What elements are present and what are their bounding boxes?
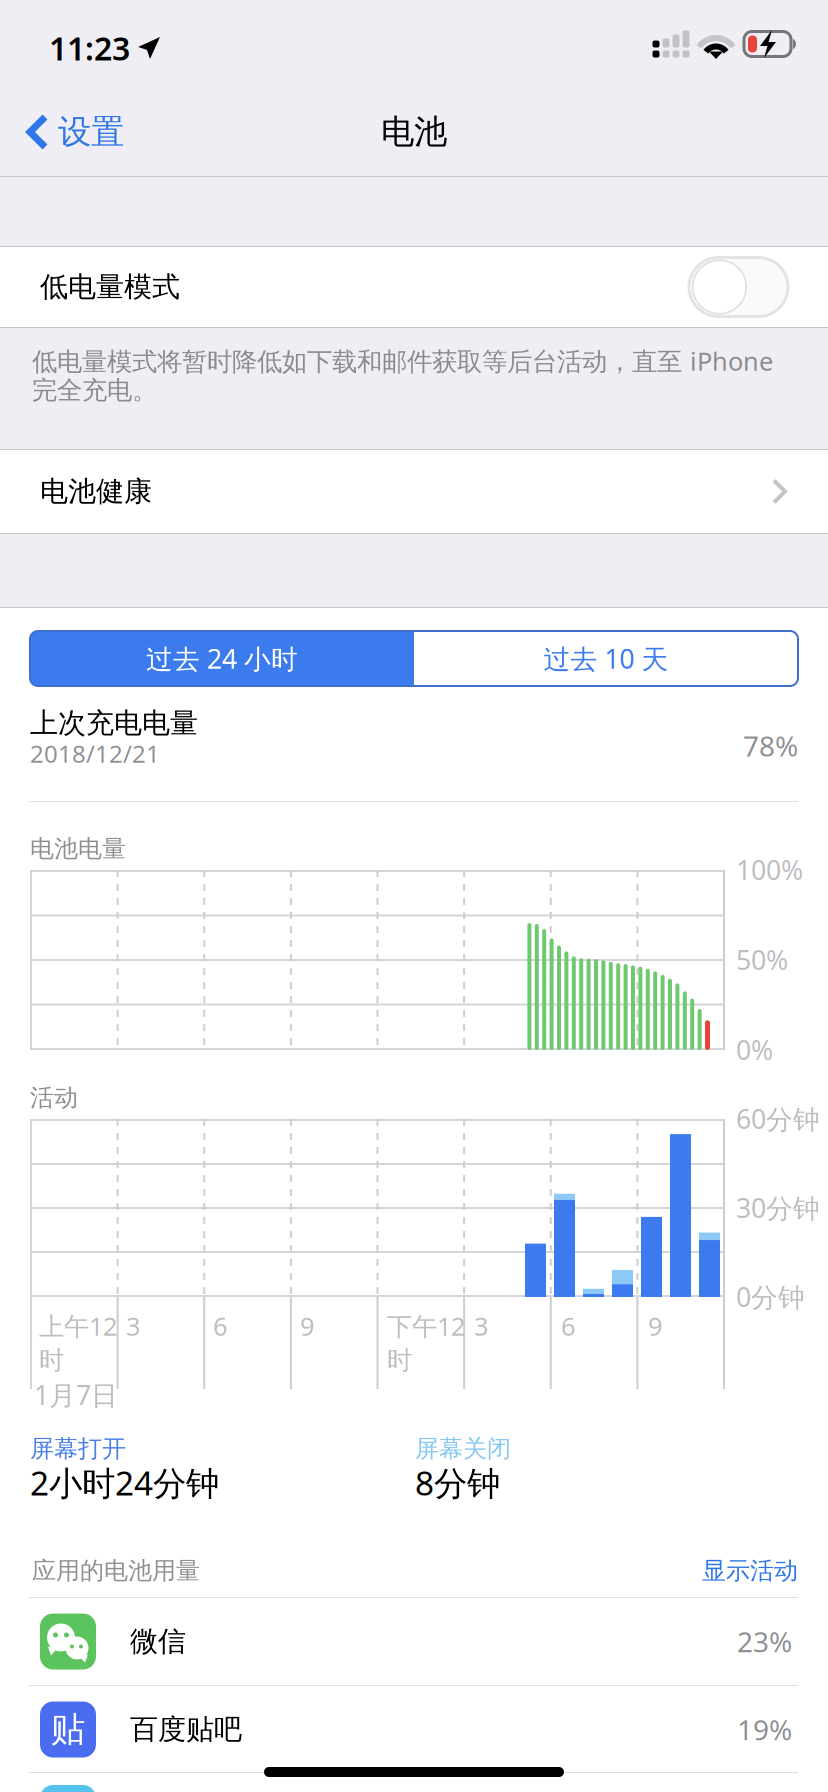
button[interactable]: 过去 24 小时	[30, 631, 414, 686]
staticText: 应用的电池用量	[32, 1556, 200, 1585]
staticText: 0%	[736, 1032, 773, 1067]
button[interactable]: 微信	[0, 1598, 828, 1685]
staticText: 23%	[737, 1623, 792, 1660]
staticText: 9	[300, 1309, 314, 1343]
staticText: 完全充电。	[32, 375, 157, 406]
button[interactable]: 贴	[0, 1686, 828, 1773]
button[interactable]: 低电量模式	[0, 247, 828, 327]
staticText: 活动	[30, 1083, 78, 1112]
button[interactable]: 显示活动	[702, 1556, 828, 1585]
staticText: 6	[213, 1309, 227, 1343]
button[interactable]: 电池健康	[0, 450, 828, 533]
staticText: 时	[387, 1345, 412, 1376]
staticText: 100%	[736, 852, 803, 887]
staticText: 78%	[743, 727, 798, 764]
staticText: 低电量模式	[40, 270, 180, 304]
staticText: 微信	[130, 1624, 186, 1659]
staticText: 2018/12/21	[30, 737, 160, 769]
staticText: 电池健康	[40, 474, 152, 509]
staticText: 1月7日	[34, 1377, 118, 1412]
staticText: 上午12	[39, 1309, 117, 1343]
staticText: 60分钟	[736, 1101, 820, 1136]
staticText: 过去 24 小时	[146, 641, 298, 676]
staticText: 设置	[58, 111, 124, 152]
staticText: 屏幕关闭	[415, 1434, 511, 1463]
staticText: 低电量模式将暂时降低如下载和邮件获取等后台活动，直至 iPhone	[32, 344, 773, 378]
staticText: 2小时24分钟	[30, 1460, 219, 1505]
staticText: 贴	[50, 1708, 85, 1751]
staticText: 50%	[736, 942, 788, 977]
staticText: 上次充电电量	[30, 706, 198, 740]
staticText: 屏幕打开	[30, 1434, 126, 1463]
button[interactable]: 过去 10 天	[414, 631, 798, 686]
staticText: 0分钟	[736, 1279, 805, 1314]
staticText: 下午12	[387, 1309, 465, 1343]
staticText: 电池电量	[30, 834, 126, 863]
staticText: 3	[126, 1309, 140, 1343]
staticText: 8分钟	[415, 1460, 500, 1505]
staticText: 百度贴吧	[130, 1712, 242, 1747]
staticText: 6	[561, 1309, 575, 1343]
staticText: 3	[474, 1309, 488, 1343]
staticText: 19%	[737, 1711, 792, 1748]
staticText: 30分钟	[736, 1190, 820, 1225]
staticText: 11:23	[49, 27, 130, 69]
staticText: 过去 10 天	[543, 641, 668, 676]
staticText: 时	[39, 1345, 64, 1376]
staticText: 9	[648, 1309, 662, 1343]
staticText: 显示活动	[702, 1556, 798, 1585]
button[interactable]: 设置	[0, 88, 142, 176]
staticText: 电池	[381, 111, 447, 152]
